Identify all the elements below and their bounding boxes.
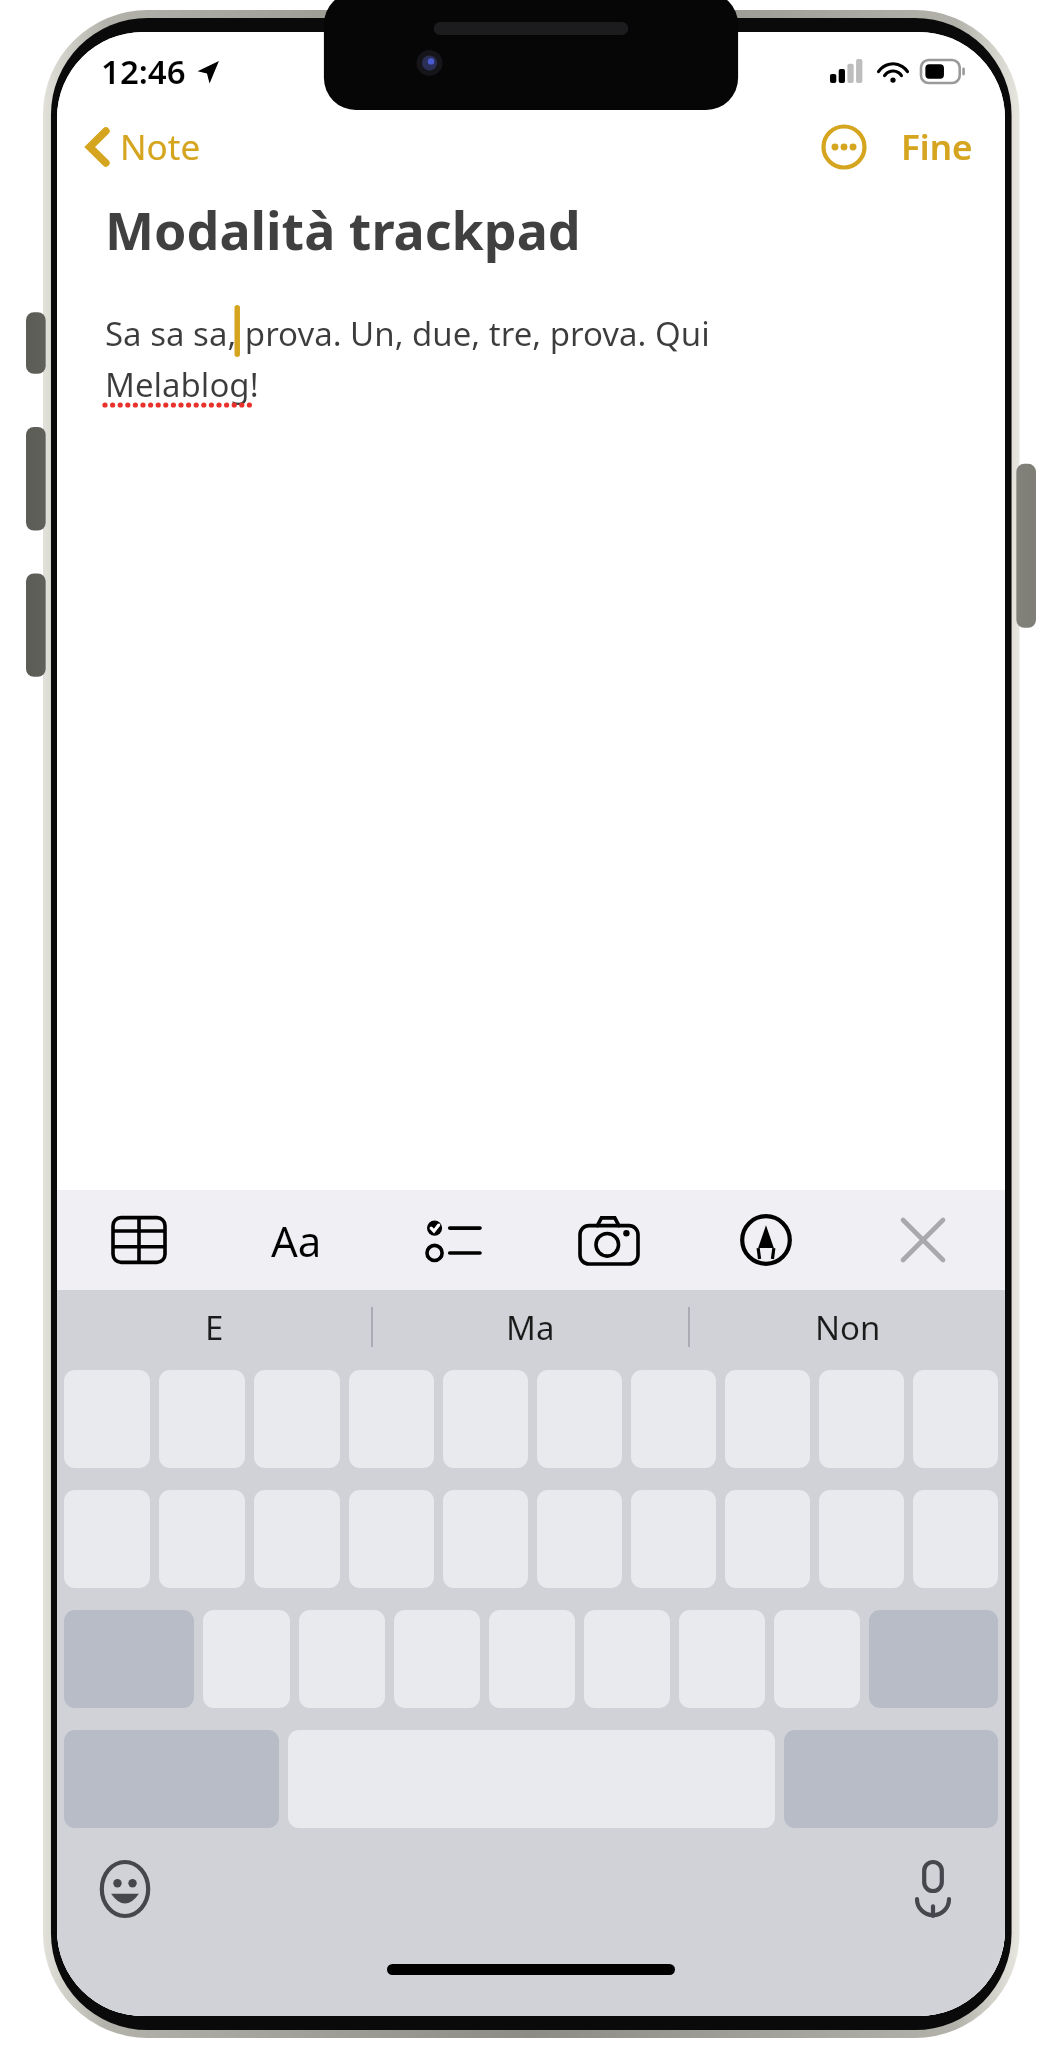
button[interactable]: Lista di controllo [405,1194,501,1286]
button[interactable]: Ma [373,1290,688,1364]
button[interactable]: Fotocamera [561,1194,657,1286]
button[interactable]: Altro [817,120,871,174]
staticText: 12:46 [101,49,186,94]
button[interactable]: Non [690,1290,1005,1364]
button[interactable]: Emoji [87,1851,163,1927]
staticText: Non [815,1305,881,1350]
button[interactable]: Chiudi [875,1194,971,1286]
button[interactable]: Disegno [718,1194,814,1286]
staticText: Fine [901,123,973,171]
button[interactable]: Fine [895,117,979,177]
staticText: Modalità trackpad [105,194,581,265]
staticText: Sa sa sa, prova. Un, due, tre, prova. Qu… [105,311,710,356]
button[interactable]: Formato testo [248,1194,344,1286]
button[interactable]: Note [79,117,209,177]
staticText: Note [120,123,201,171]
button[interactable]: Tabella [91,1194,187,1286]
staticText: Melablog! [105,362,259,407]
staticText: E [205,1305,224,1350]
staticText: Aa [271,1212,322,1269]
button[interactable]: E [57,1290,371,1364]
staticText: Ma [506,1305,555,1350]
button[interactable]: Dettatura [895,1851,971,1927]
